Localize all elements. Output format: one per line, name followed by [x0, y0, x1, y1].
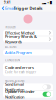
button[interactable]: Update reminder Notification	[3, 91, 53, 98]
staticText: Effective Method	[5, 30, 34, 35]
staticText: CONDITION	[5, 58, 20, 62]
staticText: ▂▄ ᯤ ▉	[42, 1, 52, 4]
staticText: Update reminder Notification	[5, 89, 35, 99]
staticText: Code and errors	[5, 65, 34, 70]
staticText: Trigger Details	[13, 6, 42, 11]
button[interactable]: Send Email Notification	[3, 83, 53, 90]
staticText: Primary Words & Keywords	[5, 34, 37, 44]
staticText: ACTIONS	[5, 45, 16, 49]
staticText: Code for each trigger	[5, 70, 36, 74]
staticText: Add a Program	[5, 50, 32, 55]
staticText: NOTIFICATIONS	[5, 79, 24, 83]
staticText: Emails	[5, 6, 17, 11]
button[interactable]: Primary Words & Keywords	[3, 36, 53, 42]
staticText: TRIGGER	[5, 25, 16, 29]
staticText: Send Email Notification	[5, 82, 24, 92]
button[interactable]: Emails	[0, 5, 19, 12]
button[interactable]: Effective Method	[3, 30, 53, 36]
staticText: 9:41	[4, 1, 11, 4]
button[interactable]: Add a Program	[3, 49, 53, 55]
